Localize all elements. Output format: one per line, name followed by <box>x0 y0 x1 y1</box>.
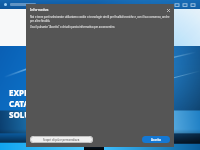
staticText: Noi e terze parti selezionate utilizziam… <box>30 15 170 23</box>
button[interactable]: Close <box>165 7 171 13</box>
button[interactable]: Close <box>189 1 196 8</box>
button[interactable]: Maximize <box>181 1 188 8</box>
button[interactable]: Scopri di più e personalizza <box>30 136 93 143</box>
staticText: Informativa <box>30 8 49 12</box>
staticText: SOLUZIONI <box>9 109 55 120</box>
staticText: EXPERIENCE <box>9 87 58 98</box>
button[interactable]: Minimize <box>173 1 180 8</box>
staticText: Scopri di più e personalizza <box>43 138 80 142</box>
staticText: Usa il pulsante "Accetta" o chiudi quest… <box>30 25 116 29</box>
button[interactable] <box>10 3 36 6</box>
staticText: CATALOGO <box>9 98 52 109</box>
button[interactable]: Tab icon <box>3 2 8 7</box>
staticText: Accetta <box>151 138 161 142</box>
button[interactable]: Accetta <box>142 136 170 143</box>
